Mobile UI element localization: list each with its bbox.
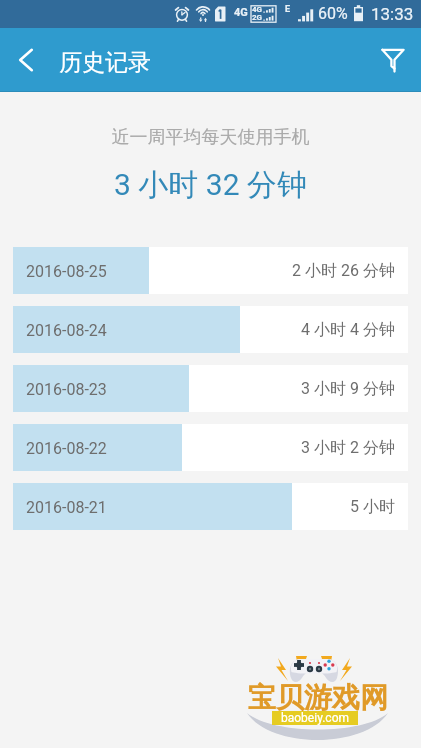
button[interactable]: 2016-08-21	[13, 483, 408, 530]
staticText: 3 小时 9 分钟	[301, 379, 395, 399]
button[interactable]: 2016-08-24	[13, 306, 408, 353]
staticText: 3 小时 2 分钟	[301, 438, 395, 458]
staticText: 5 小时	[350, 497, 395, 517]
staticText: 3 小时 32 分钟	[0, 166, 421, 204]
staticText: E	[285, 4, 291, 15]
staticText: 2016-08-24	[26, 321, 107, 340]
button[interactable]: 2016-08-22	[13, 424, 408, 471]
staticText: 2016-08-25	[26, 262, 107, 281]
button[interactable]: Filter	[365, 32, 421, 88]
staticText: 13:33	[371, 4, 414, 24]
staticText: 宝贝游戏网	[248, 680, 388, 715]
staticText: 2016-08-21	[26, 498, 107, 517]
staticText: 4G	[234, 6, 248, 19]
staticText: 2016-08-23	[26, 380, 107, 399]
staticText: 2G	[252, 13, 263, 22]
button[interactable]: 2016-08-25	[13, 247, 408, 294]
staticText: 4G	[252, 5, 263, 14]
button[interactable]: Back	[0, 34, 52, 86]
staticText: 历史记录	[59, 48, 151, 77]
staticText: baobeiy.com	[281, 711, 349, 725]
staticText: 2 小时 26 分钟	[292, 261, 395, 281]
staticText: 近一周平均每天使用手机	[0, 126, 421, 149]
staticText: 4 小时 4 分钟	[301, 320, 395, 340]
staticText: 2016-08-22	[26, 439, 107, 458]
button[interactable]: 2016-08-23	[13, 365, 408, 412]
staticText: 60%	[318, 4, 348, 23]
